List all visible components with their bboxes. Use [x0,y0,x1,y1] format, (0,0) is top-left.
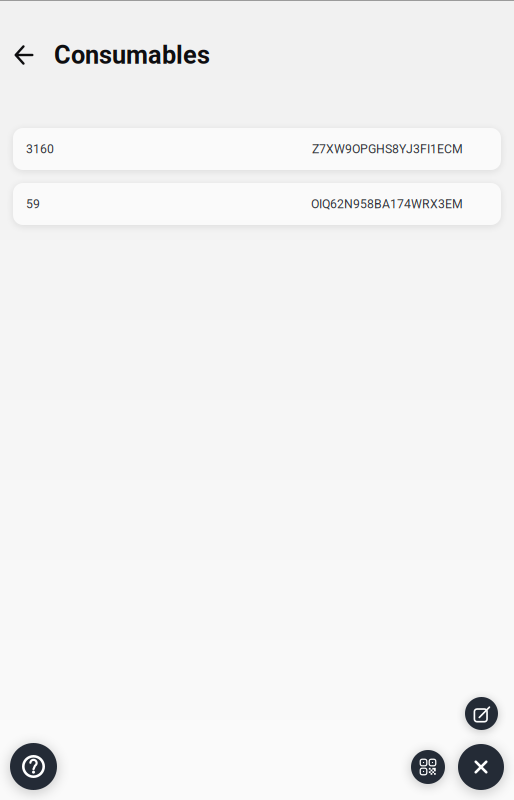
button[interactable]: Edit [465,697,498,730]
staticText: Z7XW9OPGHS8YJ3FI1ECM [312,142,463,156]
staticText: 3160 [26,142,54,156]
staticText: Consumables [54,40,210,70]
button[interactable]: 3160 [13,128,501,170]
staticText: 59 [26,197,40,211]
button[interactable]: Help [10,743,57,790]
button[interactable]: Close [458,744,504,790]
button[interactable]: Scan QR code [411,750,445,784]
button[interactable]: 59 [13,183,501,225]
button[interactable]: Back [6,35,42,75]
staticText: OIQ62N958BA174WRX3EM [311,197,463,211]
